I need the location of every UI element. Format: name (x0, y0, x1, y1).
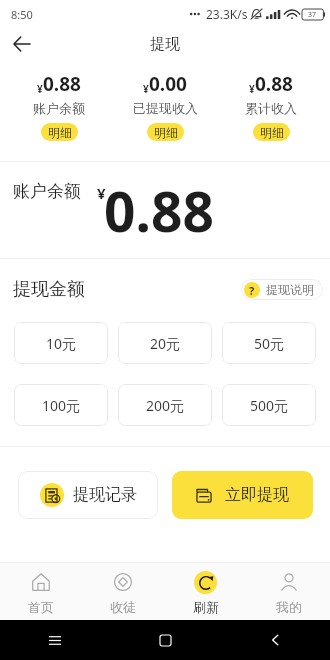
staticText: 首页 (28, 599, 54, 615)
staticText: 提现记录 (73, 485, 137, 505)
staticText: 500元 (250, 396, 289, 415)
button[interactable]: 20元 (118, 322, 212, 364)
button[interactable]: 200元 (118, 384, 212, 426)
button[interactable]: Back (7, 29, 37, 59)
staticText: ¥ (37, 82, 43, 96)
button[interactable]: 刷新 (164, 563, 247, 620)
staticText: 明细 (48, 125, 72, 140)
button[interactable]: 我的 (247, 563, 330, 620)
staticText: 提现说明 (266, 282, 314, 297)
staticText: 8:50 (11, 7, 33, 22)
staticText: 50元 (254, 334, 285, 353)
staticText: 200元 (146, 396, 185, 415)
staticText: ¥ (143, 82, 149, 96)
button[interactable]: 明细 (41, 123, 78, 141)
staticText: 刷新 (193, 599, 219, 615)
button[interactable]: 100元 (14, 384, 108, 426)
staticText: 0.88 (255, 71, 293, 97)
staticText: 37 (308, 10, 317, 20)
staticText: 0.00 (149, 71, 187, 97)
button[interactable]: 立即提现 (172, 471, 313, 519)
button[interactable]: 明细 (253, 123, 290, 141)
button[interactable]: 500元 (222, 384, 316, 426)
button[interactable]: 50元 (222, 322, 316, 364)
staticText: 明细 (154, 125, 178, 140)
staticText: ¥ (249, 82, 255, 96)
staticText: 20元 (150, 334, 181, 353)
staticText: 账户余额 (13, 181, 81, 202)
staticText: ¥ (97, 183, 106, 203)
staticText: 0.88 (104, 173, 214, 248)
button[interactable]: ? (241, 279, 323, 300)
staticText: 收徒 (110, 599, 136, 615)
staticText: 100元 (42, 396, 81, 415)
staticText: 立即提现 (225, 485, 289, 505)
other: Recents (49, 636, 61, 645)
staticText: 我的 (276, 599, 302, 615)
staticText: 账户余额 (33, 100, 85, 116)
button[interactable]: 10元 (14, 322, 108, 364)
staticText: 提现 (150, 35, 180, 54)
other: Home (160, 635, 171, 646)
staticText: 23.3K/s (206, 6, 248, 22)
staticText: 已提现收入 (133, 100, 198, 116)
staticText: 明细 (260, 125, 284, 140)
staticText: ? (249, 283, 255, 298)
staticText: 累计收入 (245, 100, 297, 116)
staticText: 10元 (46, 334, 77, 353)
button[interactable]: 首页 (0, 563, 82, 620)
button[interactable]: 明细 (147, 123, 184, 141)
button[interactable]: 提现记录 (18, 471, 158, 519)
button[interactable]: 收徒 (82, 563, 164, 620)
staticText: 提现金额 (13, 278, 85, 300)
other: Back (271, 634, 279, 646)
staticText: 0.88 (43, 71, 81, 97)
